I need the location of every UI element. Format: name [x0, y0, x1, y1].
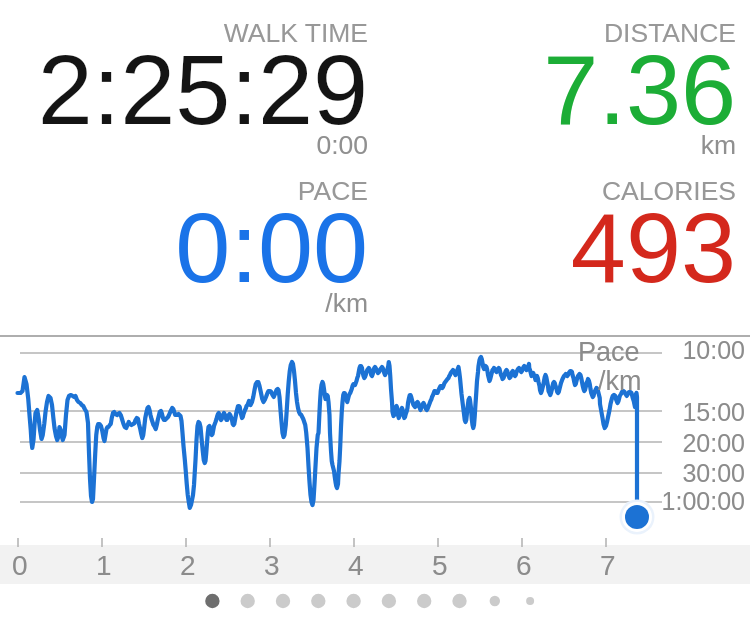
staticText: 493: [0, 192, 736, 303]
button[interactable]: CALORIES: [0, 176, 736, 619]
staticText: 30:00: [0, 459, 745, 487]
staticText: 10:00: [0, 336, 745, 364]
staticText: 20:00: [0, 429, 745, 457]
staticText: CALORIES: [0, 176, 736, 206]
staticText: 15:00: [0, 398, 745, 426]
button[interactable]: DISTANCE: [0, 18, 736, 619]
staticText: 7: [600, 550, 616, 581]
staticText: /km: [0, 288, 368, 318]
staticText: 1:00:00: [0, 487, 745, 515]
staticText: 2:25:29: [0, 34, 368, 145]
staticText: 4: [348, 550, 364, 581]
staticText: WALK TIME: [0, 18, 368, 48]
staticText: 0: [12, 550, 28, 581]
staticText: /km: [598, 366, 642, 396]
staticText: 6: [516, 550, 532, 581]
staticText: PACE: [0, 176, 368, 206]
staticText: DISTANCE: [0, 18, 736, 48]
staticText: Pace: [578, 337, 640, 367]
button[interactable]: PACE: [0, 176, 368, 619]
staticText: 0:00: [0, 130, 368, 160]
button[interactable]: WALK TIME: [0, 18, 368, 619]
staticText: 3: [264, 550, 280, 581]
staticText: 7.36: [0, 34, 736, 145]
staticText: 2: [180, 550, 196, 581]
staticText: 5: [432, 550, 448, 581]
staticText: km: [0, 130, 736, 160]
staticText: 1: [96, 550, 112, 581]
staticText: 0:00: [0, 192, 368, 303]
